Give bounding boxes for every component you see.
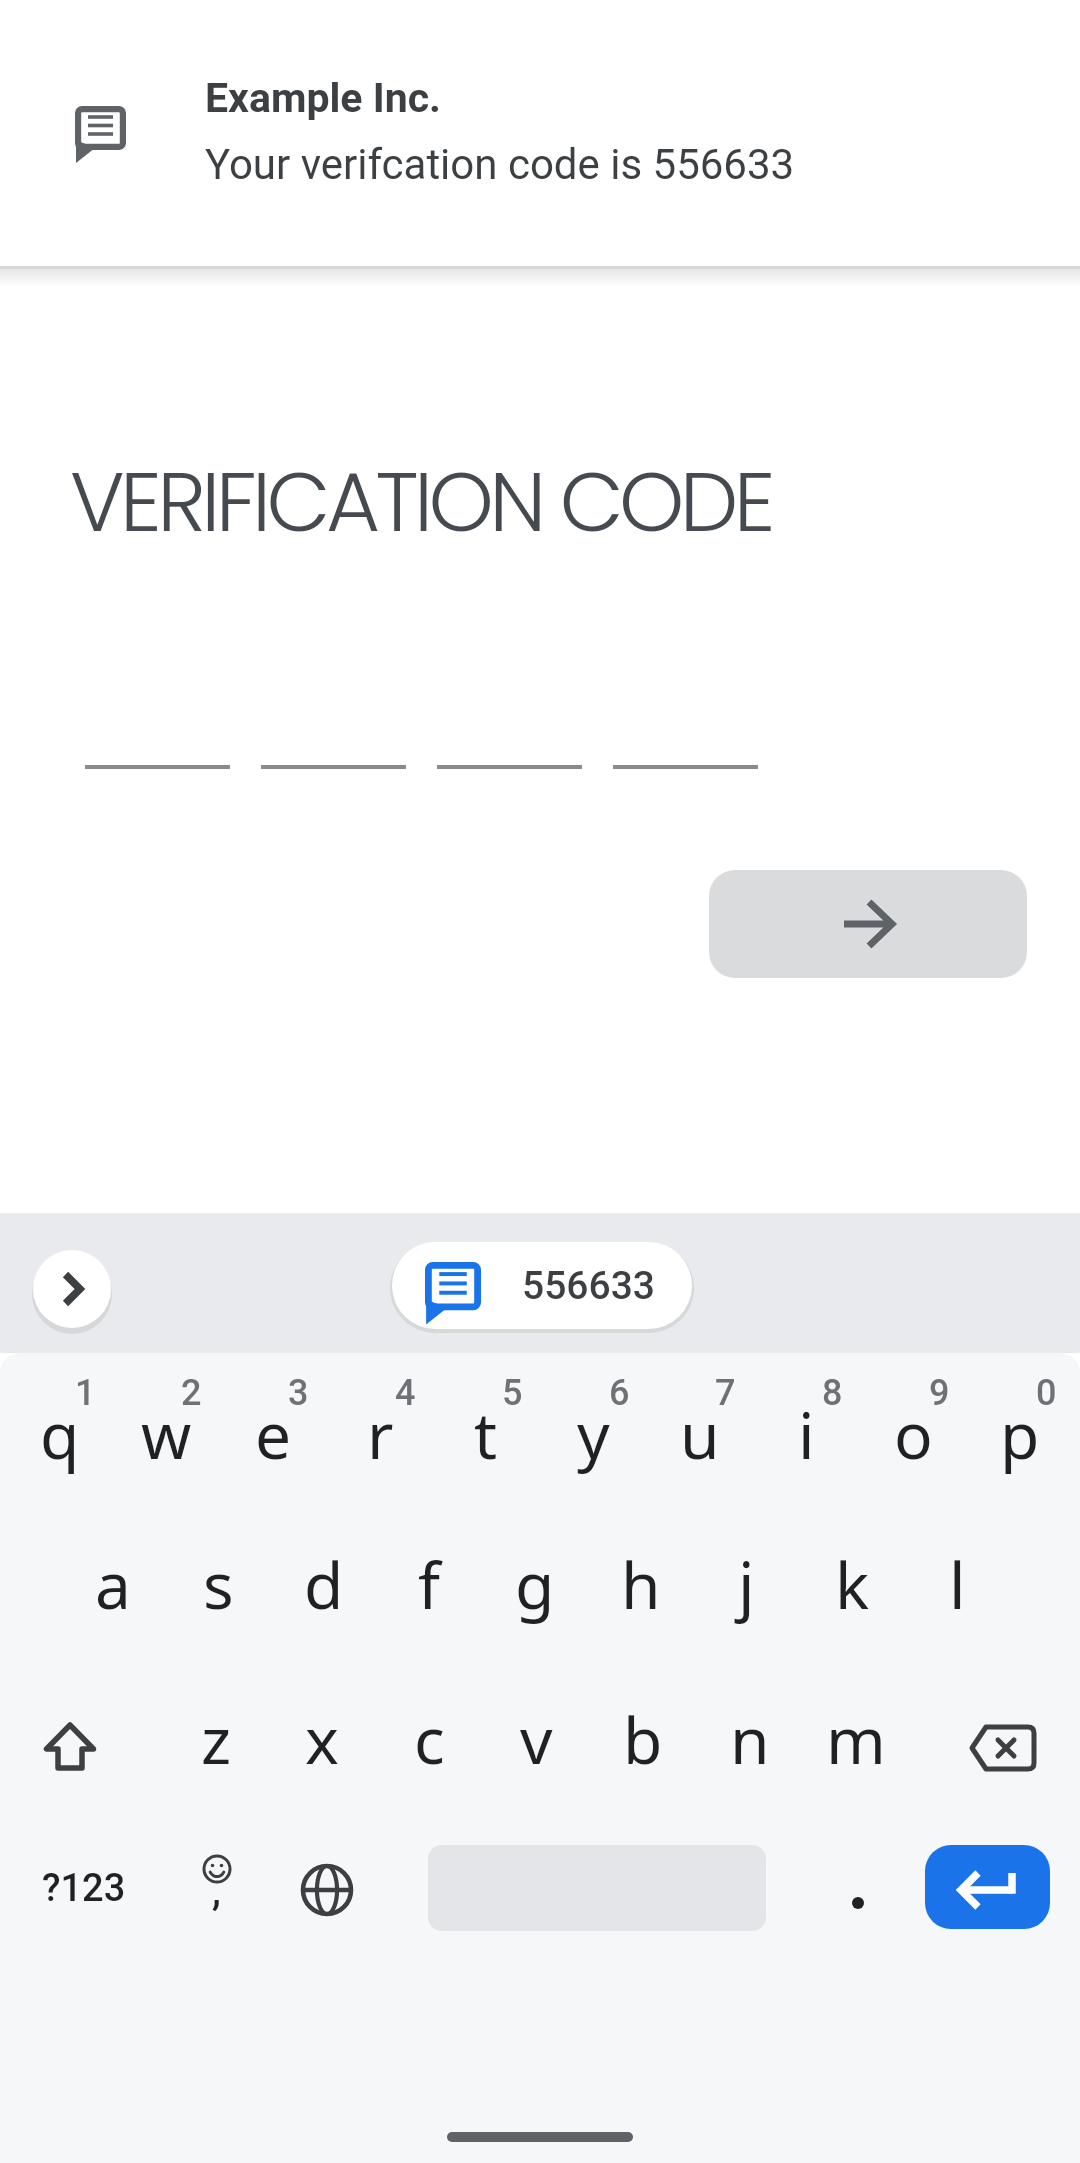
staticText: x bbox=[305, 1696, 339, 1783]
staticText: 5 bbox=[502, 1372, 523, 1414]
staticText: 2 bbox=[181, 1372, 202, 1414]
button[interactable]: k bbox=[800, 1524, 904, 1644]
staticText: ?123 bbox=[42, 1866, 126, 1911]
staticText: 1 bbox=[75, 1372, 96, 1414]
staticText: d bbox=[304, 1541, 344, 1628]
button[interactable] bbox=[925, 1845, 1050, 1929]
button[interactable]: 0 bbox=[1016, 1370, 1076, 1416]
button[interactable]: v bbox=[484, 1679, 588, 1799]
button[interactable]: u bbox=[648, 1374, 752, 1494]
staticText: 6 bbox=[609, 1372, 630, 1414]
button[interactable]: 2 bbox=[161, 1370, 221, 1416]
button[interactable]: e bbox=[221, 1374, 325, 1494]
button[interactable]: i bbox=[754, 1374, 858, 1494]
button[interactable]: s bbox=[166, 1524, 270, 1644]
button[interactable]: z bbox=[164, 1679, 268, 1799]
button[interactable]: , bbox=[163, 1840, 273, 1940]
staticText: 4 bbox=[395, 1372, 416, 1414]
button[interactable] bbox=[820, 1850, 896, 1926]
button[interactable]: 3 bbox=[268, 1370, 328, 1416]
button[interactable]: x bbox=[270, 1679, 374, 1799]
staticText: c bbox=[414, 1696, 445, 1783]
staticText: f bbox=[418, 1541, 441, 1628]
button[interactable] bbox=[279, 1842, 375, 1938]
staticText: z bbox=[201, 1696, 232, 1783]
staticText: , bbox=[212, 1868, 221, 1915]
staticText: a bbox=[95, 1541, 131, 1628]
button[interactable]: ?123 bbox=[19, 1848, 149, 1928]
button[interactable]: 556633 bbox=[498, 1256, 678, 1316]
staticText: 0 bbox=[1036, 1372, 1057, 1414]
staticText: o bbox=[894, 1391, 933, 1478]
staticText: q bbox=[40, 1391, 80, 1478]
button[interactable]: 9 bbox=[909, 1370, 969, 1416]
button[interactable] bbox=[22, 1700, 118, 1796]
staticText: 3 bbox=[288, 1372, 309, 1414]
staticText: e bbox=[255, 1391, 292, 1478]
button[interactable]: r bbox=[328, 1374, 432, 1494]
staticText: Example Inc. bbox=[205, 74, 442, 122]
staticText: 7 bbox=[715, 1372, 736, 1414]
staticText: v bbox=[520, 1696, 553, 1783]
staticText: VERIFICATION CODE bbox=[70, 444, 772, 560]
staticText: l bbox=[949, 1541, 966, 1628]
staticText: g bbox=[515, 1541, 555, 1628]
staticText: k bbox=[835, 1541, 870, 1628]
button[interactable]: 7 bbox=[695, 1370, 755, 1416]
staticText: n bbox=[730, 1696, 770, 1783]
button[interactable]: 6 bbox=[589, 1370, 649, 1416]
button[interactable]: l bbox=[905, 1524, 1009, 1644]
staticText: y bbox=[577, 1391, 610, 1478]
button[interactable] bbox=[33, 1250, 111, 1328]
button[interactable]: p bbox=[968, 1374, 1072, 1494]
staticText: j bbox=[738, 1541, 755, 1628]
button[interactable]: d bbox=[272, 1524, 376, 1644]
button[interactable]: 4 bbox=[375, 1370, 435, 1416]
button[interactable]: 5 bbox=[482, 1370, 542, 1416]
button[interactable]: c bbox=[377, 1679, 481, 1799]
staticText: p bbox=[1000, 1391, 1040, 1478]
button[interactable]: m bbox=[804, 1679, 908, 1799]
button[interactable]: b bbox=[591, 1679, 695, 1799]
staticText: 556633 bbox=[522, 1263, 655, 1309]
staticText: m bbox=[826, 1696, 886, 1783]
button[interactable]: j bbox=[694, 1524, 798, 1644]
staticText: b bbox=[623, 1696, 663, 1783]
button[interactable]: 8 bbox=[802, 1370, 862, 1416]
button[interactable] bbox=[392, 1242, 692, 1329]
staticText: 8 bbox=[822, 1372, 843, 1414]
staticText: w bbox=[141, 1391, 192, 1478]
button[interactable]: w bbox=[114, 1374, 218, 1494]
staticText: t bbox=[474, 1391, 498, 1478]
button[interactable]: q bbox=[8, 1374, 112, 1494]
button[interactable]: y bbox=[541, 1374, 645, 1494]
button[interactable]: t bbox=[434, 1374, 538, 1494]
staticText: r bbox=[367, 1391, 394, 1478]
button[interactable]: f bbox=[377, 1524, 481, 1644]
button[interactable] bbox=[709, 870, 1027, 978]
button[interactable]: a bbox=[61, 1524, 165, 1644]
staticText: i bbox=[798, 1391, 815, 1478]
staticText: u bbox=[680, 1391, 720, 1478]
button[interactable]: h bbox=[589, 1524, 693, 1644]
staticText: h bbox=[621, 1541, 661, 1628]
button[interactable]: 1 bbox=[55, 1370, 115, 1416]
staticText: Your verifcation code is 556633 bbox=[205, 140, 795, 189]
button[interactable]: g bbox=[483, 1524, 587, 1644]
staticText: s bbox=[203, 1541, 234, 1628]
button[interactable]: n bbox=[698, 1679, 802, 1799]
button[interactable] bbox=[955, 1700, 1051, 1796]
staticText: 9 bbox=[929, 1372, 950, 1414]
button[interactable] bbox=[0, 0, 1080, 264]
button[interactable]: o bbox=[861, 1374, 965, 1494]
